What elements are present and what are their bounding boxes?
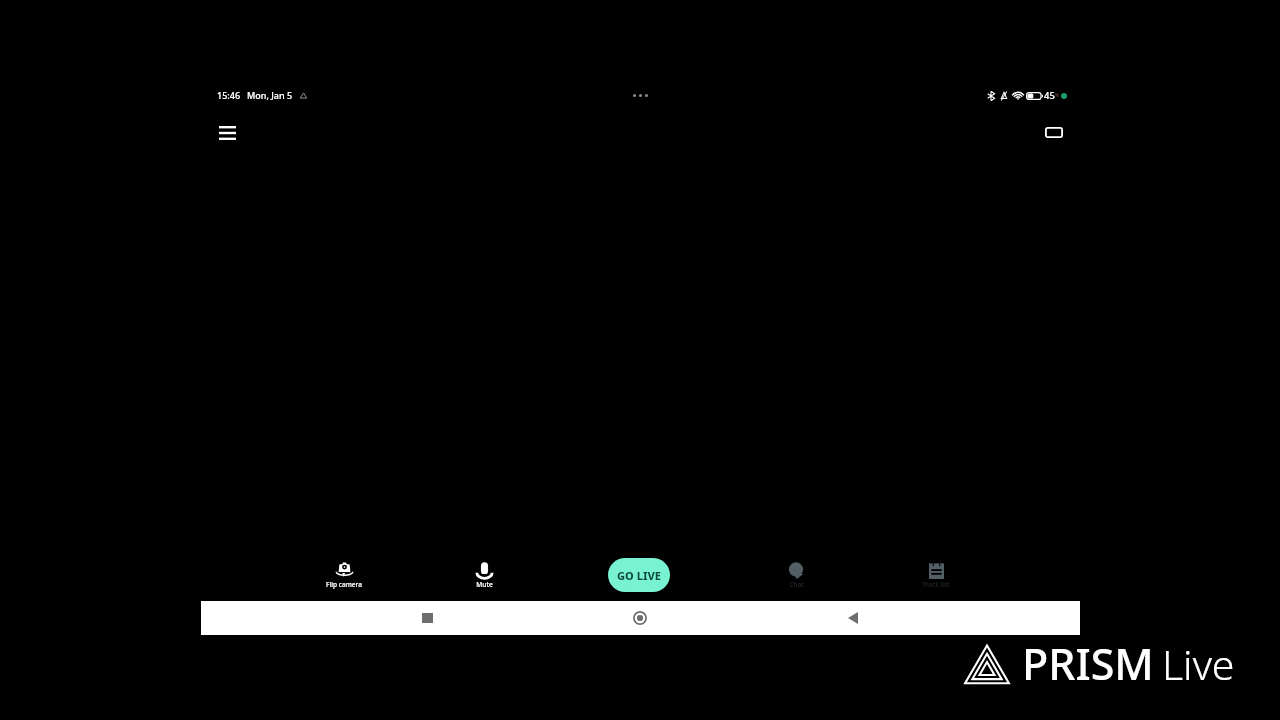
- staticText: %: [1055, 92, 1060, 99]
- staticText: Mute: [476, 580, 493, 589]
- button[interactable]: Track list: [901, 562, 971, 589]
- staticText: Mon, Jan 5: [247, 89, 293, 101]
- button[interactable]: Chat: [761, 562, 831, 589]
- staticText: PRISM: [1022, 634, 1154, 693]
- button[interactable]: Menu: [207, 113, 247, 153]
- staticText: 15:46: [217, 89, 241, 101]
- button[interactable]: Flip camera: [309, 562, 379, 589]
- button[interactable]: Home: [623, 601, 657, 635]
- staticText: Live: [1162, 636, 1235, 692]
- button[interactable]: Recents: [410, 601, 444, 635]
- staticText: GO LIVE: [617, 568, 661, 583]
- button[interactable]: Screen ratio: [1034, 113, 1074, 153]
- staticText: Track list: [922, 580, 950, 589]
- staticText: 45: [1044, 89, 1055, 102]
- staticText: Chat: [789, 580, 804, 589]
- button[interactable]: Mute: [449, 562, 519, 589]
- button[interactable]: Back: [836, 601, 870, 635]
- staticText: Flip camera: [326, 580, 362, 589]
- button[interactable]: GO LIVE: [608, 558, 670, 592]
